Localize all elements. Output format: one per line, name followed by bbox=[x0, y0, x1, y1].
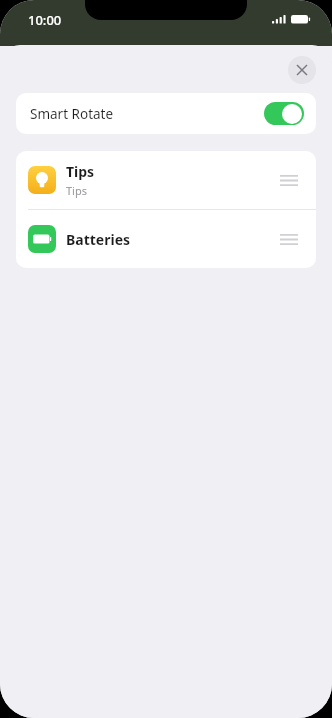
staticText: Tips bbox=[66, 183, 87, 198]
staticText: Smart Rotate bbox=[30, 105, 114, 123]
button[interactable]: Smart Rotate bbox=[16, 93, 316, 134]
button[interactable] bbox=[264, 102, 304, 125]
staticText: 10:00 bbox=[28, 11, 62, 29]
button[interactable]: Batteries bbox=[16, 210, 316, 268]
button[interactable]: Tips bbox=[16, 151, 316, 209]
button[interactable]: Reorder bbox=[278, 167, 300, 193]
button[interactable]: Reorder bbox=[278, 226, 300, 252]
button[interactable]: Close bbox=[288, 56, 316, 84]
staticText: Tips bbox=[66, 162, 95, 181]
staticText: Batteries bbox=[66, 230, 131, 249]
